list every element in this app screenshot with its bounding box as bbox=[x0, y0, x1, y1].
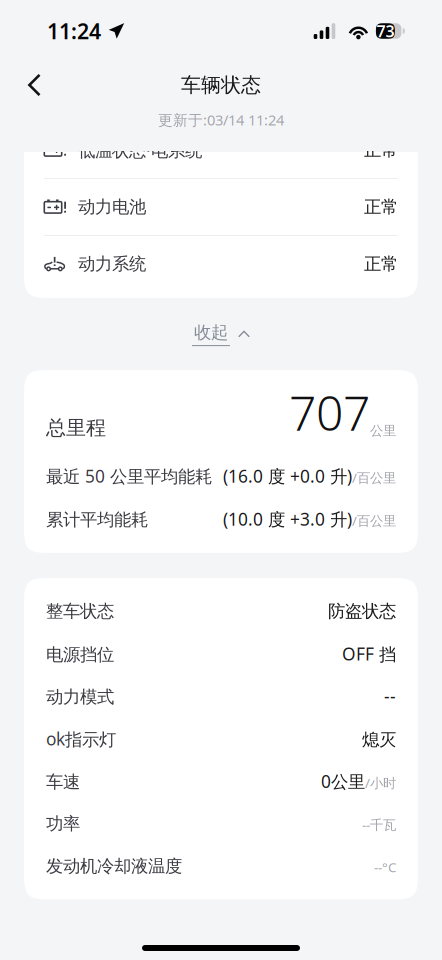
staticText: 车速 bbox=[46, 771, 80, 793]
button[interactable]: 收起 bbox=[24, 298, 418, 370]
staticText: OFF 挡 bbox=[342, 642, 396, 665]
staticText: 正常 bbox=[364, 139, 398, 161]
staticText: -- bbox=[384, 685, 396, 708]
staticText: (16.0 度 +0.0 升) bbox=[223, 464, 352, 487]
button[interactable]: 动力系统 bbox=[24, 236, 418, 292]
staticText: ok指示灯 bbox=[46, 727, 116, 750]
staticText: 动力系统 bbox=[78, 253, 146, 275]
button[interactable]: 低温状态·电系统 bbox=[24, 122, 418, 178]
staticText: 正常 bbox=[364, 253, 398, 275]
staticText: 公里 bbox=[370, 423, 396, 439]
staticText: 防盗状态 bbox=[328, 601, 396, 622]
staticText: 功率 bbox=[46, 813, 80, 834]
staticText: (10.0 度 +3.0 升) bbox=[223, 507, 352, 530]
staticText: /百公里 bbox=[352, 512, 396, 529]
staticText: 动力电池 bbox=[78, 196, 146, 218]
staticText: /百公里 bbox=[352, 469, 396, 486]
staticText: --千瓦 bbox=[362, 816, 396, 833]
staticText: 整车状态 bbox=[46, 601, 114, 622]
staticText: 0公里 bbox=[321, 770, 365, 793]
staticText: 熄灭 bbox=[362, 729, 396, 750]
button[interactable]: 动力电池 bbox=[24, 179, 418, 235]
staticText: 总里程 bbox=[46, 415, 106, 440]
button[interactable]: 返回 bbox=[0, 67, 74, 103]
staticText: 发动机冷却液温度 bbox=[46, 856, 182, 877]
staticText: 73 bbox=[376, 20, 394, 42]
staticText: 更新于:03/14 11:24 bbox=[158, 110, 284, 129]
staticText: 低温状态·电系统 bbox=[78, 138, 202, 161]
staticText: /小时 bbox=[365, 774, 396, 792]
staticText: 正常 bbox=[364, 196, 398, 218]
staticText: 累计平均能耗 bbox=[46, 509, 148, 530]
staticText: --°C bbox=[374, 858, 396, 876]
staticText: 动力模式 bbox=[46, 686, 114, 708]
staticText: 11:24 bbox=[47, 17, 101, 45]
staticText: 707 bbox=[289, 380, 370, 444]
staticText: 最近 50 公里平均能耗 bbox=[46, 464, 212, 487]
staticText: 电源挡位 bbox=[46, 644, 114, 665]
staticText: 车辆状态 bbox=[181, 73, 261, 97]
staticText: 收起 bbox=[194, 322, 228, 343]
